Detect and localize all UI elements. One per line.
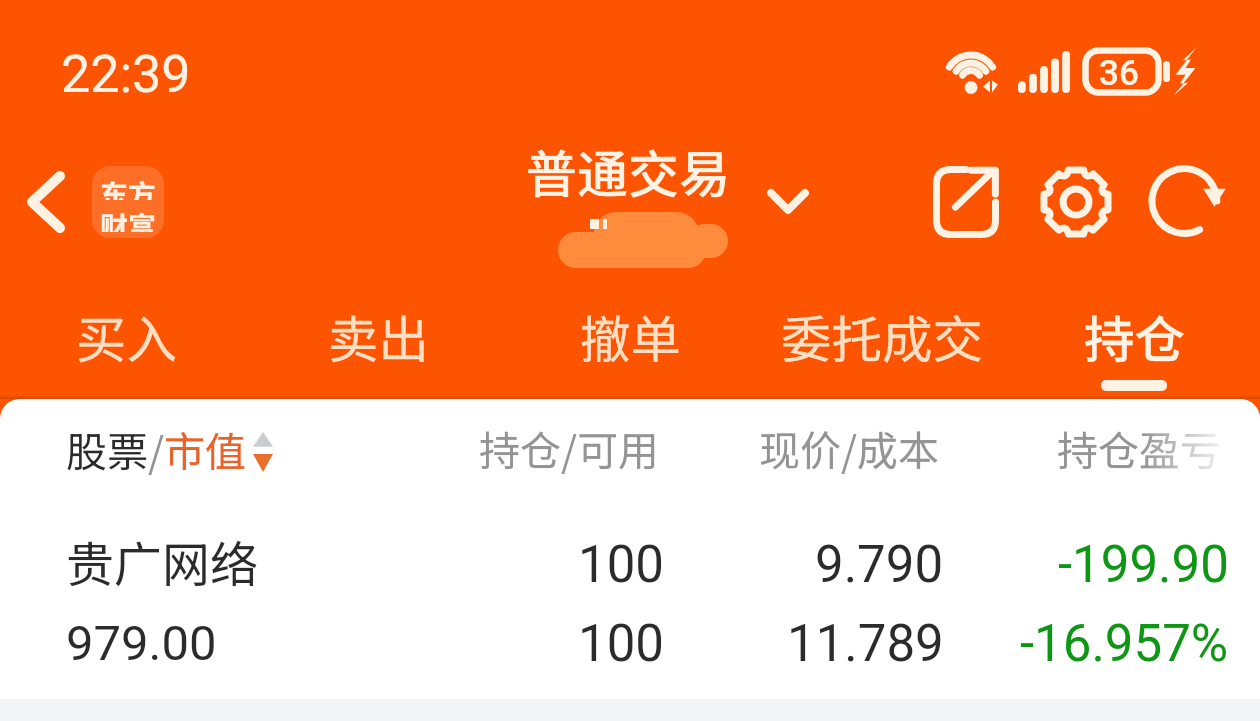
button[interactable]: Settings <box>1031 157 1121 247</box>
staticText: 22:39 <box>61 44 191 105</box>
button[interactable]: 现价/成本 <box>759 409 940 486</box>
staticText: 9.790 <box>815 535 944 595</box>
staticText: 持仓 <box>1084 299 1185 372</box>
staticText: 979.00 <box>66 615 217 672</box>
button[interactable]: Open in new window <box>921 157 1011 247</box>
staticText: 现价/成本 <box>759 418 940 477</box>
button[interactable]: Back <box>10 158 82 246</box>
staticText: 贵广网络 <box>66 526 259 596</box>
button[interactable]: 持仓盈亏 <box>1057 409 1221 486</box>
button[interactable]: 委托成交 <box>756 300 1008 399</box>
button[interactable]: Refresh <box>1147 156 1237 246</box>
button[interactable]: 持仓/可用 <box>479 409 660 486</box>
staticText: 100 <box>578 535 664 595</box>
staticText: 普通交易 <box>526 134 731 206</box>
button[interactable]: 撤单 <box>504 300 756 399</box>
staticText: 买入 <box>76 299 177 372</box>
button[interactable]: 卖出 <box>252 300 504 399</box>
staticText: 36 <box>1099 53 1139 94</box>
staticText: -199.90 <box>1058 535 1229 595</box>
staticText: 股票/市值 <box>66 419 247 478</box>
button[interactable]: 买入 <box>0 300 252 399</box>
staticText: 11.789 <box>787 614 944 674</box>
button[interactable]: Eastmoney logo <box>92 166 164 238</box>
staticText: 撤单 <box>580 299 681 372</box>
staticText: 东方 <box>100 173 157 200</box>
staticText: 委托成交 <box>781 299 983 372</box>
button[interactable]: 持仓 <box>1008 300 1260 399</box>
button[interactable]: 股票/市值 <box>66 419 273 478</box>
staticText: 财富 <box>100 205 157 232</box>
staticText: 持仓盈亏 <box>1057 418 1221 477</box>
staticText: -16.957% <box>1020 614 1229 674</box>
staticText: 持仓/可用 <box>479 418 660 477</box>
button[interactable]: 贵广网络 <box>0 499 1260 684</box>
staticText: 100 <box>578 614 664 674</box>
staticText: 卖出 <box>328 299 429 372</box>
button[interactable]: 普通交易 <box>526 134 809 206</box>
